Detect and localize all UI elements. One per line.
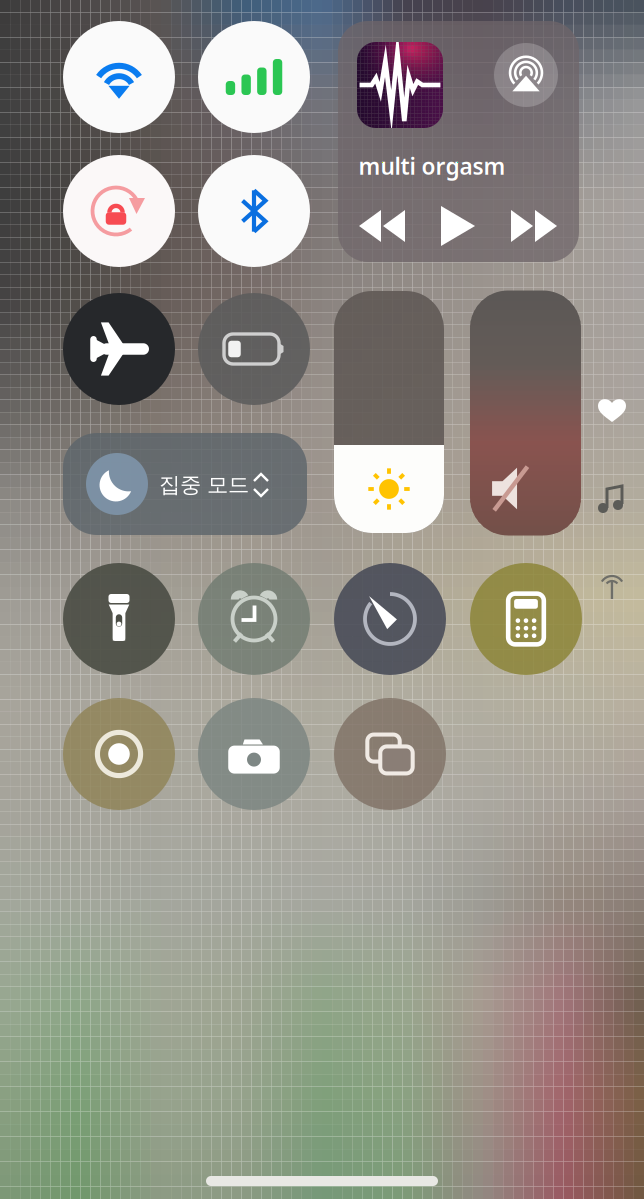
button[interactable]: Airplane Mode — [63, 293, 175, 405]
button[interactable]: Camera — [198, 698, 310, 810]
button[interactable]: Rotation Lock — [63, 155, 175, 267]
button[interactable]: Bluetooth — [198, 155, 310, 267]
button[interactable]: Timer — [334, 563, 446, 675]
button[interactable]: Focus — [63, 433, 307, 535]
button[interactable]: Cellular Data — [198, 21, 310, 133]
button[interactable]: Screen Recording — [63, 698, 175, 810]
staticText: 집중 모드 — [159, 472, 249, 498]
button[interactable]: Play — [441, 207, 475, 245]
button[interactable]: Alarm — [198, 563, 310, 675]
button[interactable]: Flashlight — [63, 563, 175, 675]
button[interactable]: Next — [513, 210, 555, 242]
button[interactable]: Wi‑Fi — [63, 21, 175, 133]
staticText: multi orgasm — [358, 151, 505, 181]
button[interactable]: Volume — [470, 290, 581, 535]
button[interactable]: AirPlay — [494, 43, 558, 107]
button[interactable]: Screen Mirroring — [334, 698, 446, 810]
button[interactable]: Previous — [361, 210, 403, 242]
button[interactable]: Brightness — [334, 291, 444, 533]
button[interactable]: Calculator — [470, 563, 582, 675]
button[interactable]: Low Power Mode — [198, 293, 310, 405]
